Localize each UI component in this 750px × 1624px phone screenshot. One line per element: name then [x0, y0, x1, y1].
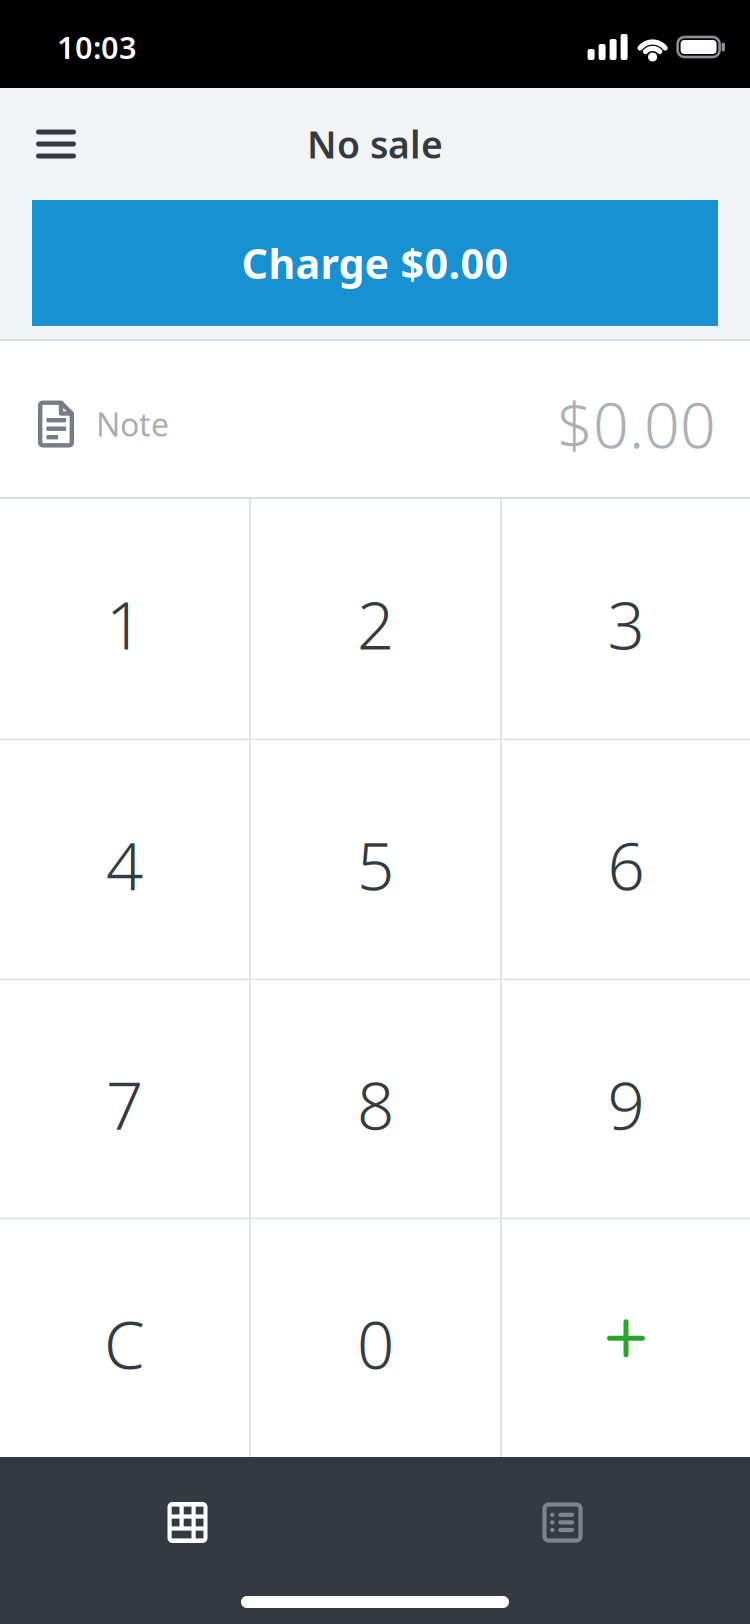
staticText: 8 — [357, 1061, 394, 1148]
button[interactable]: Note — [0, 341, 750, 497]
button[interactable]: 7 — [0, 980, 249, 1217]
button[interactable]: 2 — [251, 499, 500, 738]
button[interactable]: Library — [375, 1502, 750, 1542]
staticText: $0.00 — [557, 382, 716, 466]
staticText: Note — [96, 403, 169, 445]
staticText: 2 — [357, 581, 394, 668]
staticText: No sale — [307, 119, 443, 169]
staticText: 6 — [607, 822, 644, 908]
button[interactable]: Keypad — [0, 1502, 375, 1543]
button[interactable]: 3 — [502, 499, 750, 738]
staticText: 7 — [106, 1061, 143, 1148]
staticText: Charge $0.00 — [241, 236, 508, 290]
button[interactable]: 6 — [502, 740, 750, 978]
button[interactable]: C — [0, 1219, 249, 1457]
button[interactable]: 8 — [251, 980, 500, 1217]
staticText: 5 — [357, 822, 394, 908]
button[interactable]: 9 — [502, 980, 750, 1217]
staticText: 3 — [607, 581, 644, 668]
button[interactable]: Charge $0.00 — [32, 200, 718, 326]
button[interactable]: 4 — [0, 740, 249, 978]
button[interactable]: Add — [502, 1219, 750, 1457]
staticText: 1 — [106, 581, 143, 668]
button[interactable]: Menu — [0, 109, 76, 178]
button[interactable]: 1 — [0, 499, 249, 738]
staticText: 10:03 — [57, 27, 137, 67]
button[interactable]: 5 — [251, 740, 500, 978]
staticText: 9 — [607, 1061, 644, 1148]
staticText: C — [104, 1300, 145, 1387]
staticText: 0 — [357, 1300, 394, 1387]
staticText: 4 — [106, 822, 143, 908]
button[interactable]: 0 — [251, 1219, 500, 1457]
